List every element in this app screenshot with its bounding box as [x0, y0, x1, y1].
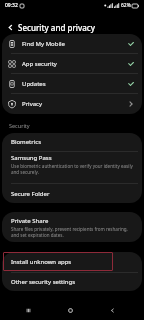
button[interactable]: Secure Folder [2, 184, 142, 203]
button[interactable]: Samsung Pass [2, 152, 142, 183]
staticText: Privacy [22, 100, 128, 108]
staticText: Security and privacy [18, 22, 95, 33]
staticText: Samsung Pass [11, 154, 52, 162]
button[interactable]: Back [91, 300, 133, 320]
staticText: Biometrics [11, 138, 42, 146]
staticText: Updates [22, 80, 128, 88]
staticText: Install unknown apps [11, 258, 72, 266]
button[interactable]: Back [3, 20, 17, 34]
button[interactable]: Privacy [2, 94, 142, 113]
button[interactable]: Install unknown apps [2, 252, 142, 272]
button[interactable]: Private Share [2, 212, 142, 242]
button[interactable]: Recent apps [8, 300, 49, 320]
staticText: Use biometric authentication to verify y… [11, 163, 133, 175]
staticText: 62% [121, 2, 131, 9]
staticText: Find My Mobile [22, 40, 128, 48]
staticText: Security [9, 122, 30, 129]
button[interactable]: Home [49, 300, 91, 320]
staticText: 09:32 [5, 2, 18, 9]
button[interactable]: Other security settings [2, 273, 142, 291]
button[interactable]: Updates [2, 74, 142, 93]
button[interactable]: Biometrics [2, 133, 142, 151]
staticText: App security [22, 60, 128, 68]
staticText: Share files privately, prevent recipient… [11, 226, 128, 238]
staticText: Private Share [11, 217, 49, 225]
staticText: Secure Folder [11, 190, 50, 198]
button[interactable]: Find My Mobile [2, 34, 142, 53]
staticText: Other security settings [11, 278, 76, 286]
button[interactable]: App security [2, 54, 142, 73]
